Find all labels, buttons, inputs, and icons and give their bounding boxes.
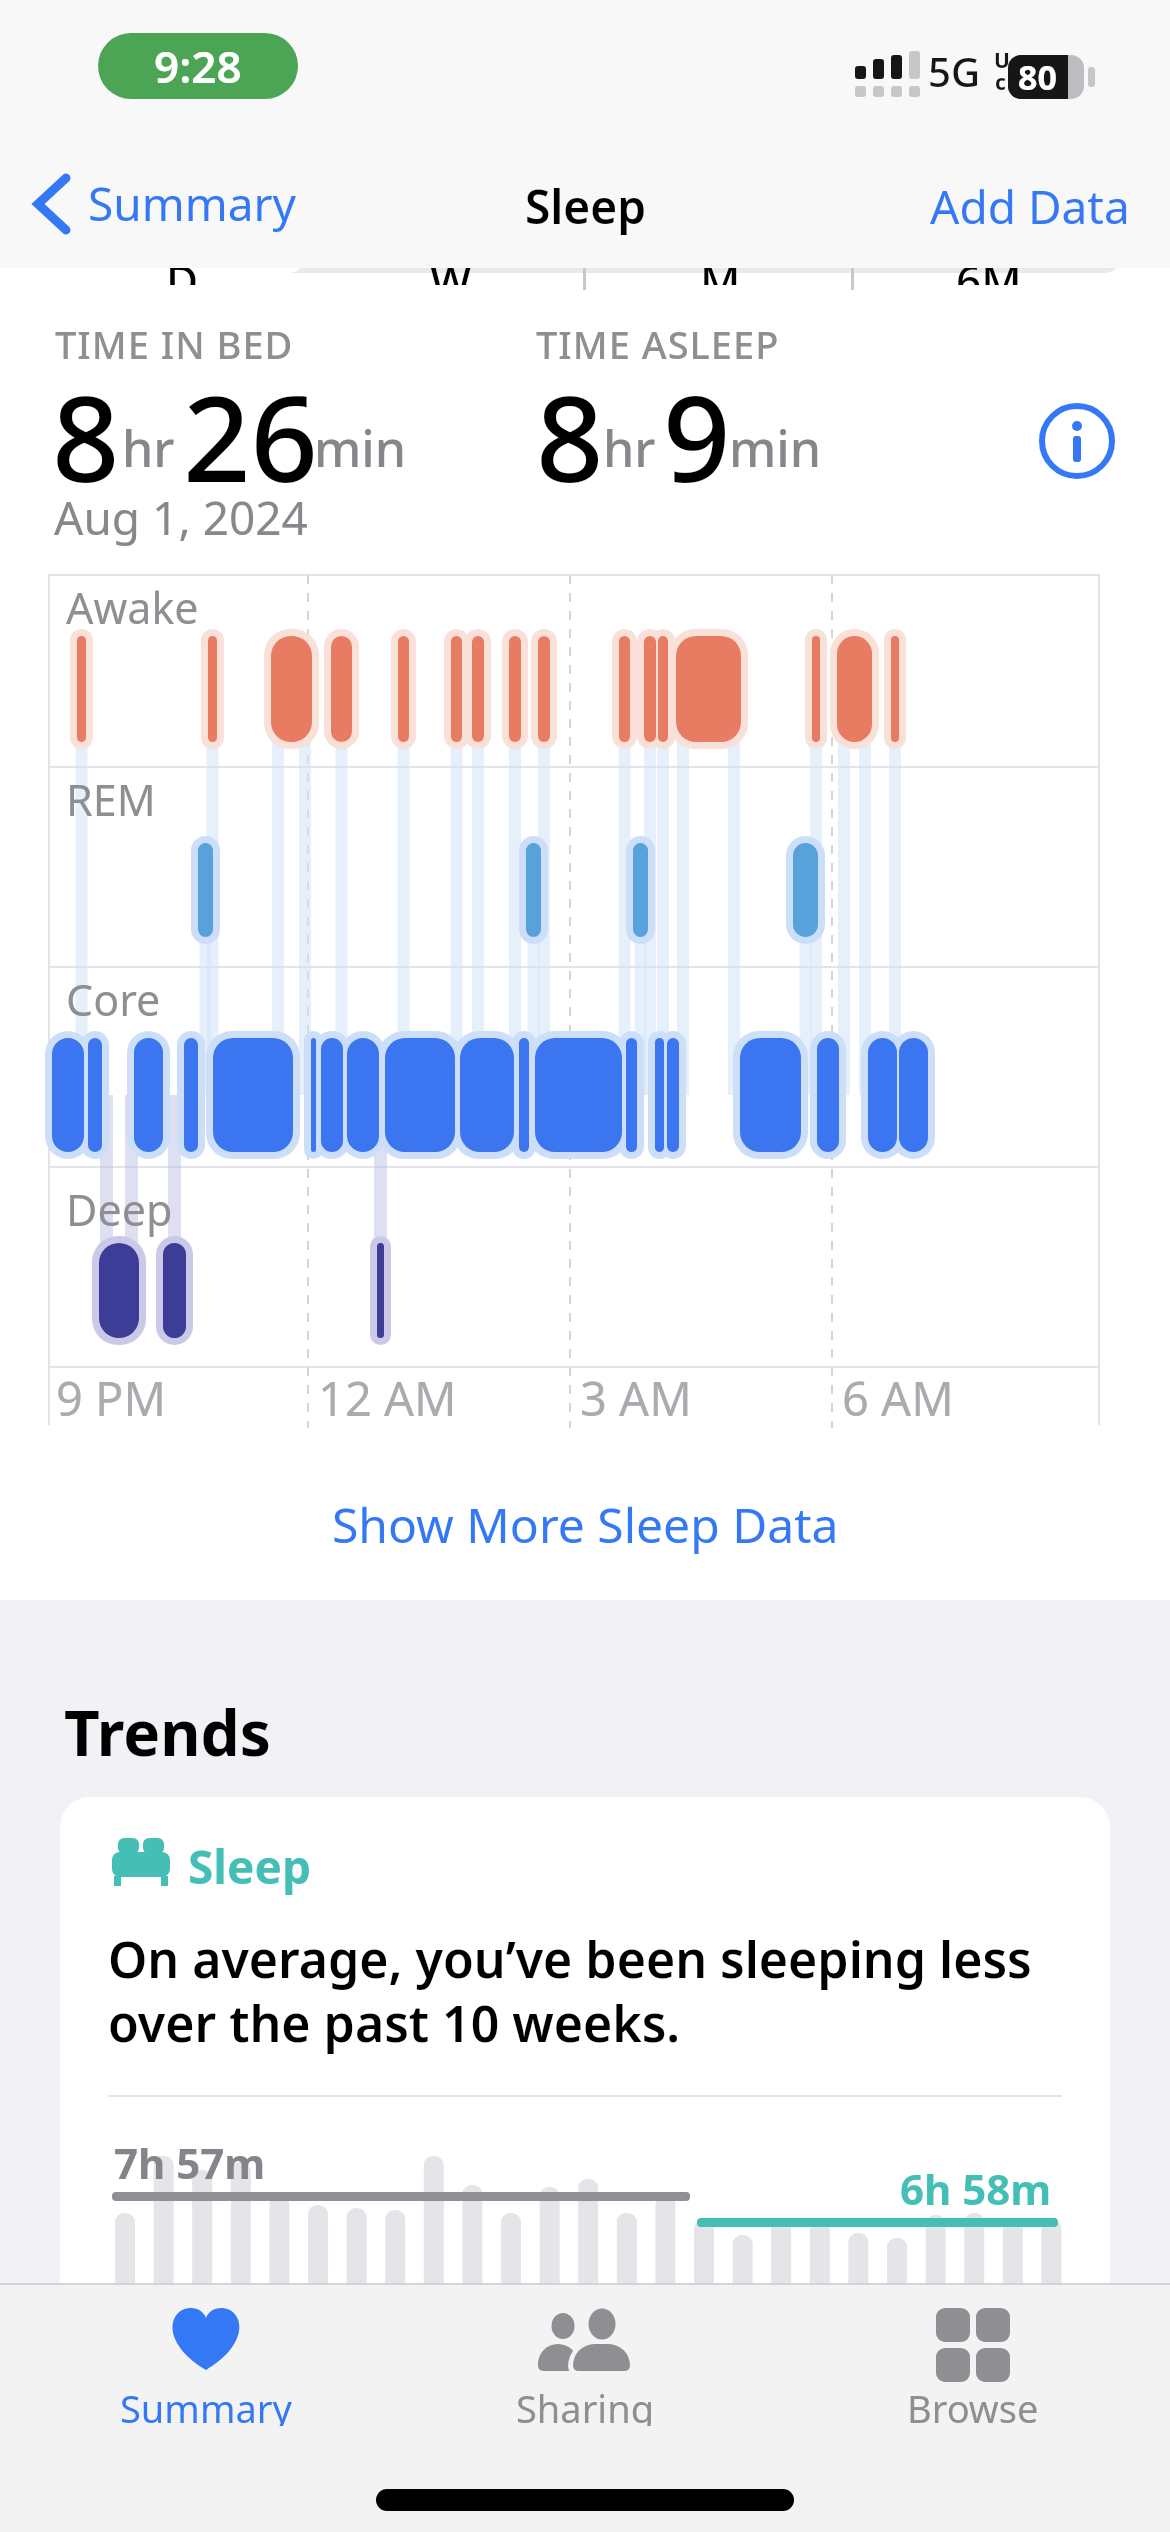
staticText: 9 PM — [56, 1366, 167, 1430]
staticText: TIME IN BED — [55, 318, 294, 370]
staticText: hr — [603, 414, 656, 482]
staticText: U — [994, 46, 1010, 75]
staticText: Add Data — [930, 175, 1130, 238]
staticText: 12 AM — [318, 1366, 457, 1430]
button[interactable]: Summary — [96, 2292, 316, 2442]
staticText: Summary — [120, 2382, 292, 2426]
staticText: 80 — [1018, 54, 1057, 100]
staticText: Core — [66, 970, 161, 1029]
staticText: W — [430, 268, 472, 285]
staticText: Awake — [66, 578, 199, 637]
button[interactable]: Show More Sleep Data — [285, 1488, 885, 1560]
button[interactable]: 9:28 — [98, 33, 298, 99]
button[interactable]: Sharing — [475, 2292, 695, 2442]
staticText: TIME ASLEEP — [536, 318, 780, 370]
staticText: D — [166, 268, 199, 285]
staticText: REM — [66, 770, 156, 829]
staticText: 9:28 — [154, 36, 242, 96]
staticText: 8 — [536, 356, 604, 517]
staticText: Trends — [64, 1690, 271, 1774]
staticText: Sleep — [525, 175, 646, 238]
staticText: 3 AM — [580, 1366, 692, 1430]
staticText: 6M — [956, 268, 1022, 285]
staticText: 7h 57m — [114, 2134, 266, 2191]
staticText: 5G — [928, 44, 980, 98]
staticText: hr — [122, 414, 175, 482]
staticText: Aug 1, 2024 — [54, 486, 308, 549]
staticText: Browse — [907, 2382, 1039, 2426]
staticText: min — [729, 414, 822, 482]
staticText: c — [995, 68, 1006, 97]
staticText: Sharing — [516, 2382, 655, 2426]
button[interactable] — [1038, 402, 1116, 480]
staticText: 8 — [52, 356, 120, 517]
button[interactable] — [48, 268, 306, 273]
button[interactable]: Sleep — [60, 1797, 1110, 2317]
staticText: Sleep — [188, 1835, 312, 1898]
button[interactable]: D — [48, 268, 316, 285]
button[interactable]: Add Data — [890, 172, 1130, 240]
staticText: 6 AM — [842, 1366, 954, 1430]
button[interactable]: 6M — [855, 268, 1122, 285]
staticText: On average, you’ve been sleeping less ov… — [108, 1925, 1032, 2057]
staticText: Summary — [88, 172, 296, 235]
staticText: M — [700, 268, 741, 285]
button[interactable]: W — [317, 268, 585, 285]
staticText: Show More Sleep Data — [332, 1492, 839, 1557]
staticText: 9 — [663, 356, 731, 517]
staticText: 6h 58m — [900, 2160, 1052, 2217]
button[interactable]: Summary — [20, 168, 320, 244]
button[interactable]: Browse — [863, 2292, 1083, 2442]
staticText: 26 — [183, 356, 318, 517]
staticText: Deep — [66, 1180, 173, 1239]
staticText: min — [314, 414, 407, 482]
button[interactable]: M — [586, 268, 854, 285]
